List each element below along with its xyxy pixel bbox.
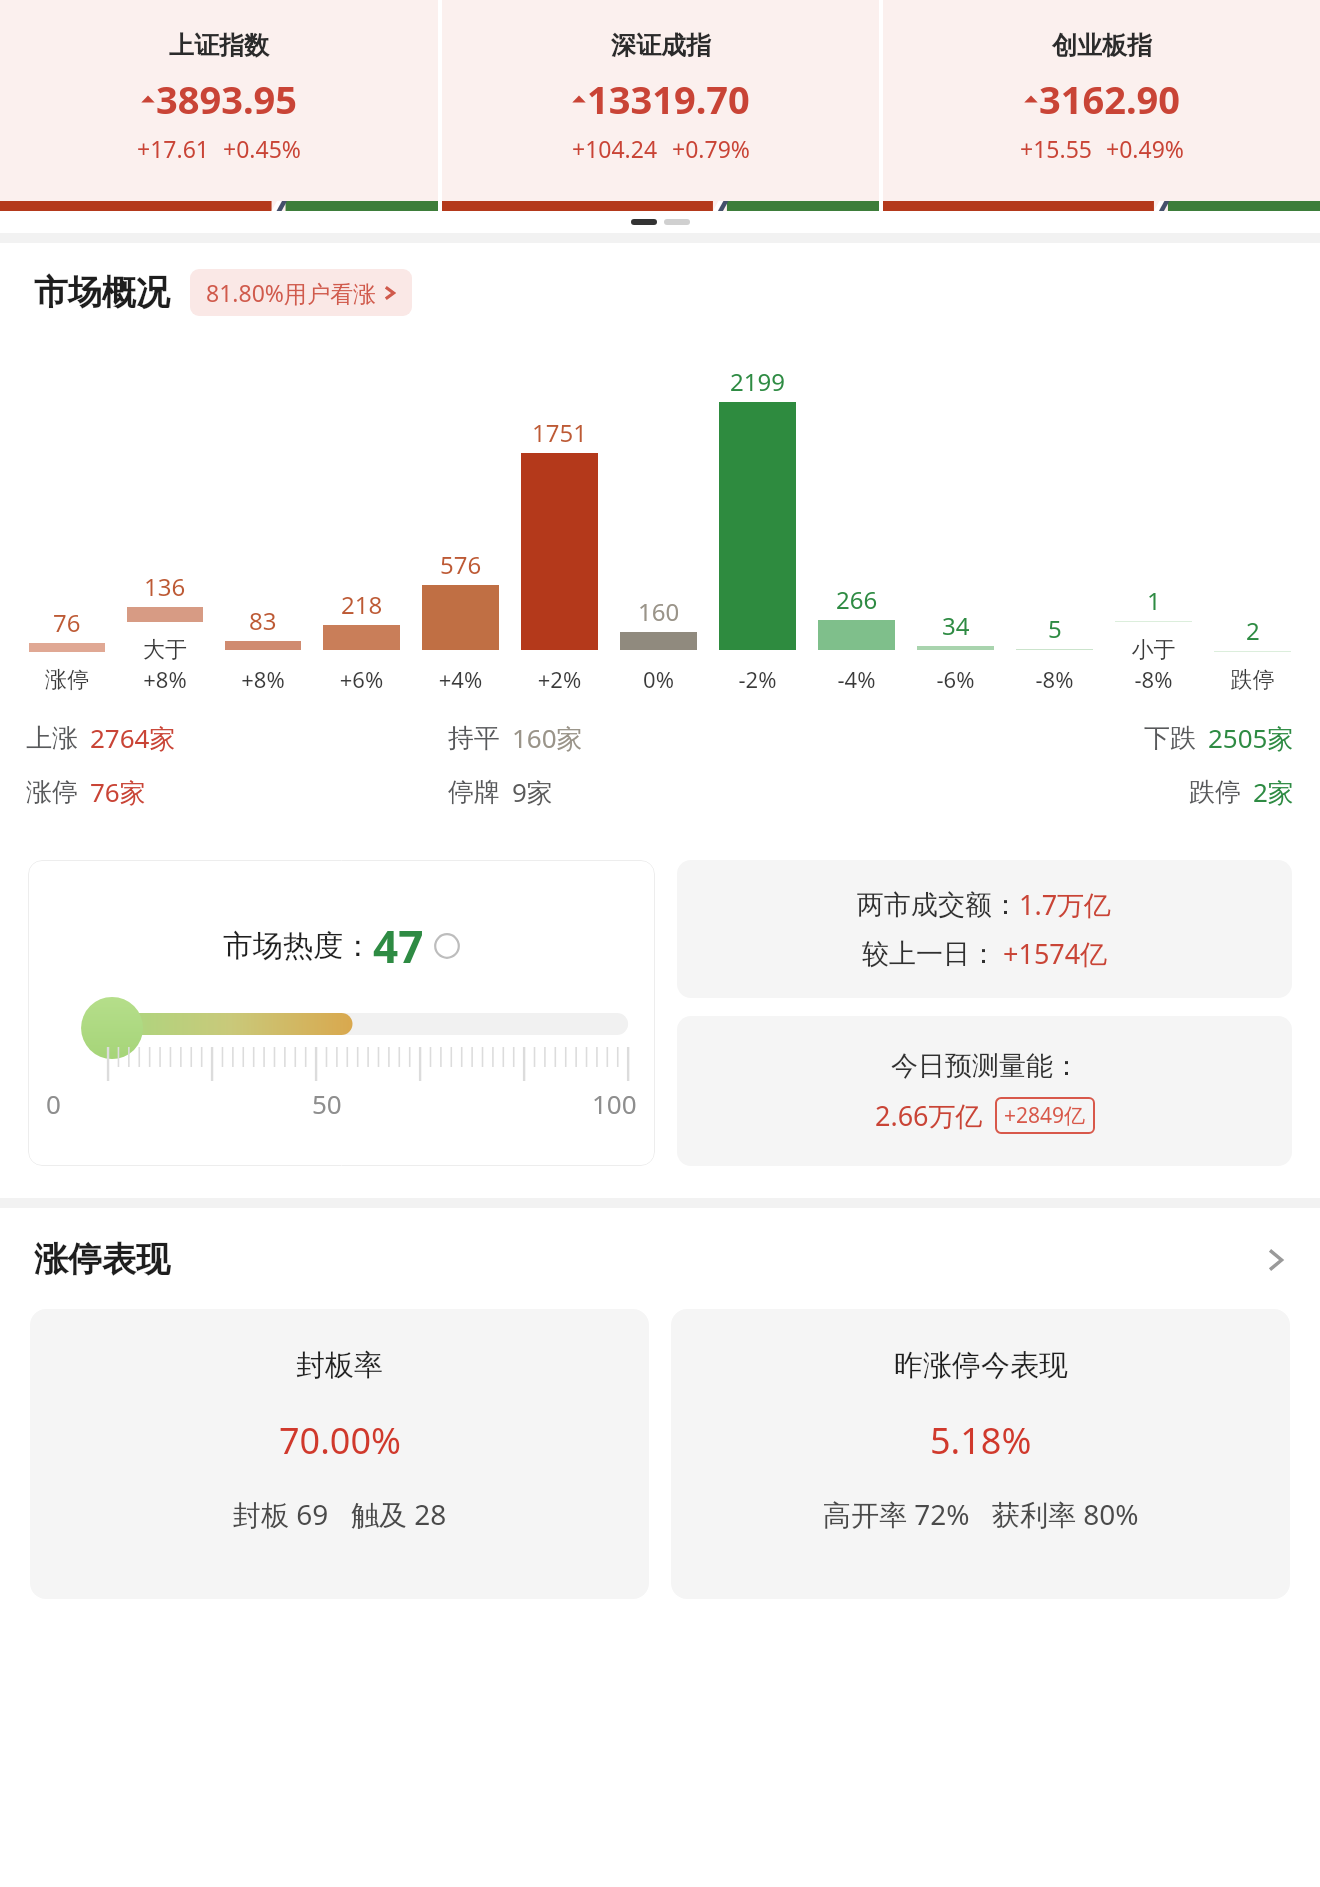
staticText: 50 bbox=[312, 1086, 342, 1121]
staticText: +17.61 bbox=[137, 133, 209, 164]
staticText: -6% bbox=[906, 664, 1005, 694]
button[interactable]: 两市成交额： bbox=[677, 860, 1292, 998]
staticText: 160家 bbox=[512, 720, 583, 756]
staticText: +8% bbox=[214, 664, 312, 694]
staticText: +0.45% bbox=[223, 133, 301, 164]
staticText: 跌停 bbox=[1203, 666, 1302, 694]
staticText: 1.7万亿 bbox=[1019, 886, 1112, 923]
staticText: +1574亿 bbox=[1003, 935, 1108, 972]
staticText: 昨涨停今表现 bbox=[894, 1347, 1068, 1384]
staticText: -4% bbox=[807, 664, 906, 694]
staticText: 81.80%用户看涨 bbox=[206, 277, 376, 308]
staticText: 0 bbox=[46, 1086, 61, 1121]
staticText: 2199 bbox=[730, 365, 785, 398]
staticText: 涨停 bbox=[26, 776, 78, 809]
staticText: 今日预测量能： bbox=[891, 1049, 1080, 1083]
staticText: 两市成交额： bbox=[857, 888, 1019, 922]
staticText: -8% bbox=[1005, 664, 1104, 694]
staticText: 76 bbox=[53, 606, 81, 639]
staticText: +6% bbox=[312, 664, 411, 694]
staticText: 0% bbox=[609, 664, 708, 694]
staticText: 大于 bbox=[116, 636, 214, 664]
staticText: 1751 bbox=[532, 416, 587, 449]
staticText: +0.79% bbox=[672, 133, 750, 164]
staticText: 47 bbox=[373, 916, 424, 976]
button[interactable]: 创业板指 bbox=[883, 0, 1320, 211]
staticText: 9家 bbox=[512, 774, 553, 810]
staticText: 2 bbox=[1246, 614, 1260, 647]
staticText: +2849亿 bbox=[1004, 1101, 1086, 1130]
staticText: 576 bbox=[440, 548, 482, 581]
staticText: 小于 bbox=[1104, 636, 1203, 664]
staticText: 持平 bbox=[448, 722, 500, 755]
button[interactable]: 81.80%用户看涨 bbox=[190, 269, 412, 316]
staticText: 3162.90 bbox=[1039, 73, 1181, 125]
staticText: 停牌 bbox=[448, 776, 500, 809]
staticText: 5 bbox=[1048, 612, 1062, 645]
staticText: -2% bbox=[708, 664, 807, 694]
staticText: 136 bbox=[144, 570, 186, 603]
staticText: 上涨 bbox=[26, 722, 78, 755]
staticText: 市场热度： bbox=[223, 927, 373, 965]
button[interactable]: 今日预测量能： bbox=[677, 1016, 1292, 1166]
staticText: 218 bbox=[341, 588, 383, 621]
staticText: 2505家 bbox=[1208, 720, 1294, 756]
button[interactable]: 涨停表现 bbox=[0, 1238, 1320, 1281]
staticText: 深证成指 bbox=[611, 30, 711, 61]
staticText: 涨停 bbox=[18, 666, 116, 694]
staticText: 封板 69 bbox=[233, 1495, 329, 1533]
staticText: 1 bbox=[1147, 584, 1161, 617]
staticText: 266 bbox=[836, 583, 878, 616]
staticText: 34 bbox=[942, 609, 970, 642]
staticText: 100 bbox=[592, 1086, 637, 1121]
staticText: 获利率 80% bbox=[992, 1495, 1139, 1533]
staticText: +2% bbox=[510, 664, 609, 694]
staticText: 13319.70 bbox=[587, 73, 750, 125]
other: 更多涨停表现 bbox=[1266, 1244, 1286, 1276]
staticText: 涨停表现 bbox=[34, 1238, 170, 1281]
staticText: +0.49% bbox=[1106, 133, 1184, 164]
button[interactable]: 昨涨停今表现 bbox=[671, 1309, 1290, 1599]
staticText: 封板率 bbox=[296, 1347, 383, 1384]
button[interactable]: 市场热度： bbox=[28, 860, 655, 1166]
staticText: 2家 bbox=[1253, 774, 1294, 810]
staticText: 跌停 bbox=[1189, 776, 1241, 809]
button[interactable]: 深证成指 bbox=[442, 0, 879, 211]
staticText: 创业板指 bbox=[1052, 30, 1152, 61]
staticText: 下跌 bbox=[1144, 722, 1196, 755]
staticText: +4% bbox=[411, 664, 510, 694]
staticText: 3893.95 bbox=[156, 73, 298, 125]
staticText: 2764家 bbox=[90, 720, 176, 756]
staticText: +15.55 bbox=[1020, 133, 1092, 164]
staticText: 70.00% bbox=[279, 1416, 401, 1465]
staticText: 5.18% bbox=[930, 1416, 1032, 1465]
staticText: 76家 bbox=[90, 774, 146, 810]
staticText: +104.24 bbox=[572, 133, 658, 164]
staticText: 高开率 72% bbox=[823, 1495, 970, 1533]
staticText: 160 bbox=[638, 595, 680, 628]
staticText: +8% bbox=[116, 664, 214, 694]
staticText: -8% bbox=[1104, 664, 1203, 694]
staticText: 83 bbox=[249, 604, 277, 637]
staticText: 触及 28 bbox=[351, 1495, 447, 1533]
staticText: 市场概况 bbox=[34, 271, 170, 314]
staticText: 上证指数 bbox=[169, 30, 269, 61]
staticText: 较上一日： bbox=[862, 937, 997, 971]
button[interactable]: 上证指数 bbox=[0, 0, 438, 211]
button[interactable]: 封板率 bbox=[30, 1309, 649, 1599]
staticText: 2.66万亿 bbox=[875, 1097, 983, 1134]
